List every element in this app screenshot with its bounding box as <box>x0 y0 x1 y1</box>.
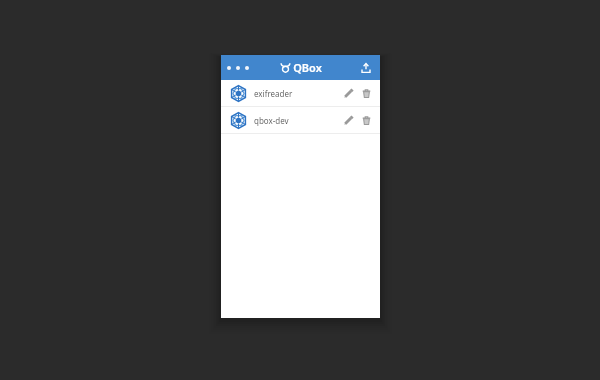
button[interactable]: Edit qbox-dev <box>340 112 356 128</box>
button[interactable]: Edit exifreader <box>340 85 356 101</box>
button[interactable]: qbox-dev <box>221 107 380 133</box>
button[interactable]: Delete exifreader <box>358 85 374 101</box>
button[interactable]: Upload <box>358 60 374 76</box>
staticText: qbox-dev <box>254 115 340 126</box>
button[interactable]: exifreader <box>221 80 380 106</box>
staticText: exifreader <box>254 88 340 99</box>
button[interactable]: Close window <box>227 66 231 70</box>
staticText: QBox <box>293 60 322 75</box>
button[interactable]: Delete qbox-dev <box>358 112 374 128</box>
button[interactable]: Minimize window <box>236 66 240 70</box>
button[interactable]: Maximize window <box>245 66 249 70</box>
